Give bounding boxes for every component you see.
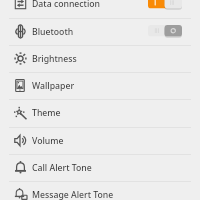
button[interactable]: Volume: [0, 127, 200, 154]
button[interactable]: Bluetooth: [0, 18, 200, 45]
button[interactable]: Wallpaper: [0, 72, 200, 99]
staticText: Brightness: [32, 53, 77, 65]
button[interactable]: Turn on: [148, 24, 182, 38]
staticText: Data connection: [32, 0, 101, 10]
button[interactable]: Data connection: [0, 0, 200, 17]
staticText: Wallpaper: [32, 80, 75, 92]
staticText: Bluetooth: [32, 26, 74, 38]
staticText: Theme: [32, 107, 61, 119]
button[interactable]: Message Alert Tone: [0, 181, 200, 200]
button[interactable]: Turn off: [148, 0, 182, 10]
button[interactable]: Call Alert Tone: [0, 154, 200, 181]
staticText: Volume: [32, 135, 64, 147]
button[interactable]: Theme: [0, 99, 200, 126]
staticText: Message Alert Tone: [32, 189, 114, 200]
staticText: Call Alert Tone: [32, 162, 92, 174]
button[interactable]: Brightness: [0, 45, 200, 72]
